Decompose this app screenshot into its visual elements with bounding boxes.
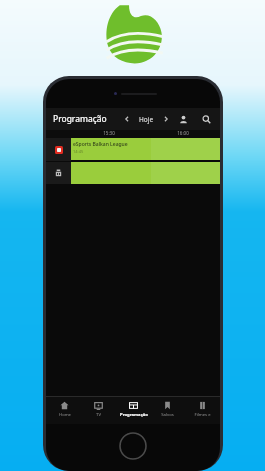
staticText: 15:30 xyxy=(103,130,115,136)
button[interactable]: Salvos xyxy=(151,397,184,424)
button[interactable]: Hoje xyxy=(137,115,156,124)
button[interactable]: eSports Balkan League xyxy=(46,138,220,161)
staticText: Filmes e xyxy=(194,412,211,418)
button[interactable]: Home xyxy=(48,397,81,424)
staticText: Salvos xyxy=(161,412,174,418)
staticText: TV xyxy=(96,412,101,418)
staticText: Programação xyxy=(120,412,148,418)
button[interactable]: Programação xyxy=(117,397,150,424)
button[interactable]: eSports Balkan League xyxy=(71,138,220,160)
button[interactable] xyxy=(46,138,71,161)
staticText: Programação xyxy=(53,113,107,125)
staticText: 16:00 xyxy=(177,130,189,136)
staticText: Home xyxy=(59,412,71,418)
button[interactable]: Next day xyxy=(160,113,172,125)
button[interactable]: Search xyxy=(199,112,213,126)
button[interactable]: Previous day xyxy=(121,113,133,125)
other: Home button xyxy=(119,432,147,460)
button[interactable] xyxy=(46,162,220,184)
button[interactable] xyxy=(71,162,220,184)
staticText: 14:45 xyxy=(73,149,84,154)
staticText: Hoje xyxy=(139,115,154,124)
button[interactable]: TV xyxy=(82,397,115,424)
staticText: eSports Balkan League xyxy=(73,141,128,148)
button[interactable] xyxy=(46,162,71,184)
button[interactable]: Account xyxy=(176,112,190,126)
button[interactable]: Filmes e xyxy=(186,397,219,424)
